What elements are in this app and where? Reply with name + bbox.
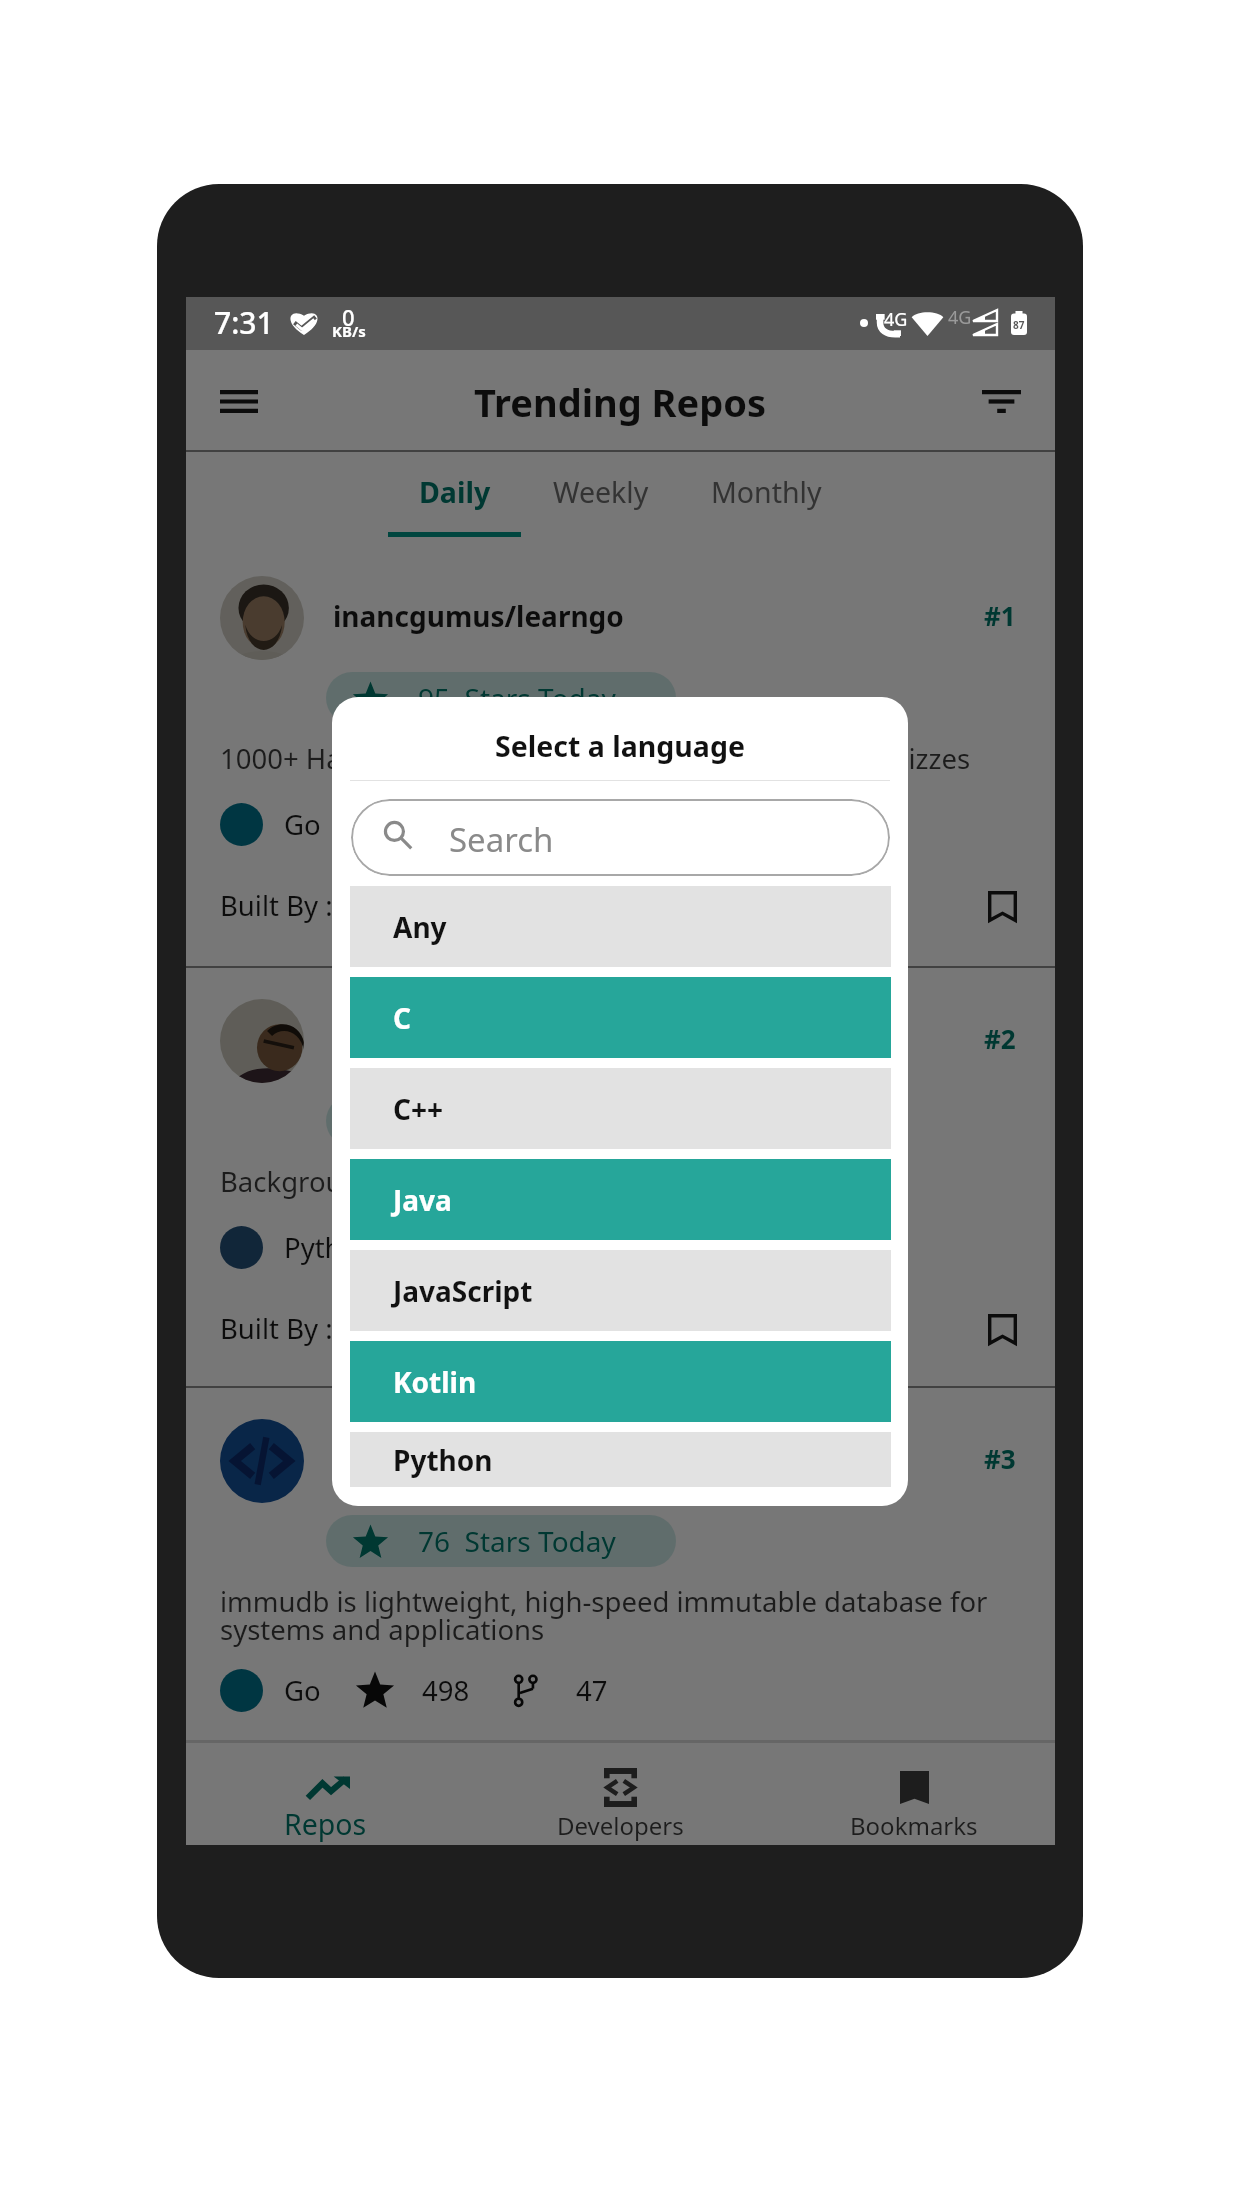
staticText: Trending Repos bbox=[474, 376, 767, 428]
staticText: Background removal tool with deep image … bbox=[220, 1163, 1010, 1200]
staticText: Python bbox=[393, 1441, 493, 1479]
staticText: JavaScript bbox=[393, 1272, 533, 1310]
button[interactable]: Open navigation menu bbox=[199, 361, 279, 441]
staticText: Built By : bbox=[220, 887, 333, 924]
staticText: #3 bbox=[984, 1441, 1016, 1476]
staticText: immudb is lightweight, high-speed immuta… bbox=[220, 1583, 1010, 1648]
button[interactable]: JavaScript bbox=[350, 1250, 891, 1331]
button[interactable]: Java bbox=[350, 1159, 891, 1240]
button[interactable]: Repos bbox=[186, 1740, 475, 1845]
button[interactable]: Bookmark repository bbox=[970, 1297, 1034, 1361]
staticText: 95 Stars Today bbox=[418, 679, 616, 717]
button[interactable]: Search languages bbox=[351, 799, 890, 876]
staticText: Bookmarks bbox=[850, 1809, 978, 1842]
button[interactable]: C++ bbox=[350, 1068, 891, 1149]
staticText: Python bbox=[284, 1229, 376, 1266]
button[interactable]: Kotlin bbox=[350, 1341, 891, 1422]
staticText: Java bbox=[393, 1181, 452, 1219]
staticText: C++ bbox=[393, 1090, 444, 1128]
staticText: inancgumus/learngo bbox=[333, 597, 624, 635]
button[interactable]: Daily bbox=[388, 452, 521, 545]
staticText: 7:31 bbox=[214, 302, 274, 343]
button[interactable]: Any bbox=[350, 886, 891, 967]
staticText: Repos bbox=[284, 1805, 367, 1844]
staticText: Daily bbox=[419, 473, 491, 512]
staticText: Go bbox=[284, 806, 321, 843]
staticText: Ebazhanov/in-skill-quiz bbox=[333, 1020, 654, 1058]
button[interactable]: codenotary/immudb bbox=[186, 1388, 1055, 1818]
staticText: 1000+ Hands-On Go Exercises, Lessons, Ta… bbox=[220, 740, 1010, 777]
staticText: 4G bbox=[948, 305, 972, 330]
staticText: 0 bbox=[342, 302, 355, 332]
button[interactable]: Monthly bbox=[681, 452, 852, 545]
staticText: Select a language bbox=[332, 727, 908, 766]
staticText: 81 Stars Today bbox=[418, 1102, 616, 1140]
staticText: 87 bbox=[1013, 318, 1025, 332]
staticText: Go bbox=[284, 1672, 321, 1709]
staticText: Built By : bbox=[220, 1753, 333, 1790]
button[interactable]: Bookmark repository bbox=[970, 874, 1034, 938]
staticText: 76 Stars Today bbox=[418, 1522, 616, 1560]
staticText: 498 bbox=[422, 1672, 470, 1709]
staticText: KB/s bbox=[332, 321, 366, 341]
staticText: #2 bbox=[984, 1021, 1016, 1056]
staticText: codenotary/immudb bbox=[333, 1440, 621, 1478]
staticText: 812 bbox=[477, 1229, 525, 1266]
button[interactable]: Filter repositories bbox=[961, 361, 1041, 441]
button[interactable]: inancgumus/learngo bbox=[186, 545, 1055, 968]
button[interactable]: Bookmark repository bbox=[970, 1740, 1034, 1804]
staticText: 47 bbox=[576, 1672, 608, 1709]
button[interactable]: Weekly bbox=[521, 452, 681, 545]
staticText: Built By : bbox=[220, 1310, 333, 1347]
button[interactable]: Ebazhanov/in-skill-quiz bbox=[186, 968, 1055, 1388]
staticText: Search bbox=[449, 817, 554, 862]
button[interactable]: Bookmarks bbox=[765, 1740, 1055, 1845]
staticText: Weekly bbox=[553, 473, 649, 512]
staticText: Monthly bbox=[711, 473, 822, 512]
staticText: C bbox=[393, 999, 411, 1037]
staticText: #1 bbox=[984, 598, 1016, 633]
staticText: Developers bbox=[557, 1809, 684, 1842]
staticText: Kotlin bbox=[393, 1363, 477, 1401]
button[interactable]: Developers bbox=[475, 1740, 765, 1845]
staticText: 2.3k bbox=[422, 806, 476, 843]
staticText: 4G bbox=[884, 307, 908, 332]
staticText: Any bbox=[393, 908, 447, 946]
button[interactable]: Python bbox=[350, 1432, 891, 1487]
staticText: 96 bbox=[631, 1229, 663, 1266]
button[interactable]: C bbox=[350, 977, 891, 1058]
